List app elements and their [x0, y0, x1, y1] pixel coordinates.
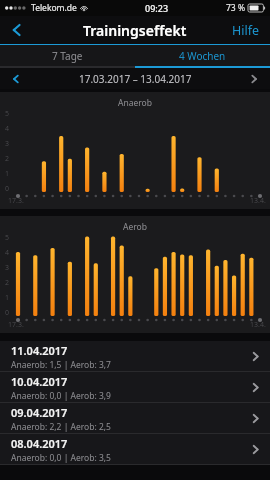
staticText: 4 Wochen [179, 49, 226, 63]
staticText: 5 [5, 109, 10, 119]
staticText: 13.4. [250, 320, 266, 330]
staticText: 2 [5, 154, 10, 164]
staticText: 2 [5, 278, 10, 288]
button[interactable]: 10.04.2017 [0, 372, 270, 403]
button[interactable]: 08.04.2017 [0, 434, 270, 465]
staticText: 4 [5, 124, 10, 134]
button[interactable]: 7 Tage [0, 45, 135, 66]
button[interactable]: 11.04.2017 [0, 341, 270, 372]
staticText: Anaerob: 0,0 | Aerob: 3,5 [11, 452, 111, 464]
button[interactable]: Previous period [0, 68, 32, 89]
staticText: 3 [5, 139, 10, 149]
staticText: 1 [5, 293, 10, 303]
staticText: Aerob [123, 221, 147, 233]
staticText: Telekom.de [31, 2, 77, 14]
staticText: 5 [5, 233, 10, 243]
staticText: 09:23 [145, 2, 169, 14]
staticText: 4 [5, 248, 10, 258]
staticText: 1 [5, 169, 10, 179]
staticText: Anaerob [118, 97, 152, 109]
staticText: 08.04.2017 [11, 436, 68, 451]
staticText: 0 [5, 308, 10, 318]
staticText: 13.4. [250, 196, 266, 206]
staticText: 3 [5, 263, 10, 273]
staticText: 73 % [226, 2, 245, 14]
staticText: 11.04.2017 [11, 343, 68, 358]
staticText: 7 Tage [52, 49, 83, 63]
staticText: Anaerob: 0,0 | Aerob: 3,9 [11, 390, 111, 402]
staticText: 09.04.2017 [11, 405, 68, 420]
button[interactable]: 09.04.2017 [0, 403, 270, 434]
button[interactable]: 4 Wochen [135, 45, 270, 66]
staticText: 17.3. [8, 196, 24, 206]
staticText: 0 [5, 184, 10, 194]
staticText: 17.03.2017 – 13.04.2017 [79, 72, 192, 86]
staticText: 10.04.2017 [11, 374, 68, 389]
button[interactable]: Hilfe [222, 16, 270, 44]
staticText: Anaerob: 2,2 | Aerob: 2,5 [11, 421, 111, 433]
staticText: Trainingseffekt [83, 21, 187, 40]
staticText: 17.3. [8, 320, 24, 330]
staticText: Hilfe [232, 22, 260, 39]
button[interactable]: Next period [238, 68, 270, 89]
staticText: Anaerob: 1,5 | Aerob: 3,7 [11, 359, 111, 371]
button[interactable]: Back [0, 16, 34, 44]
